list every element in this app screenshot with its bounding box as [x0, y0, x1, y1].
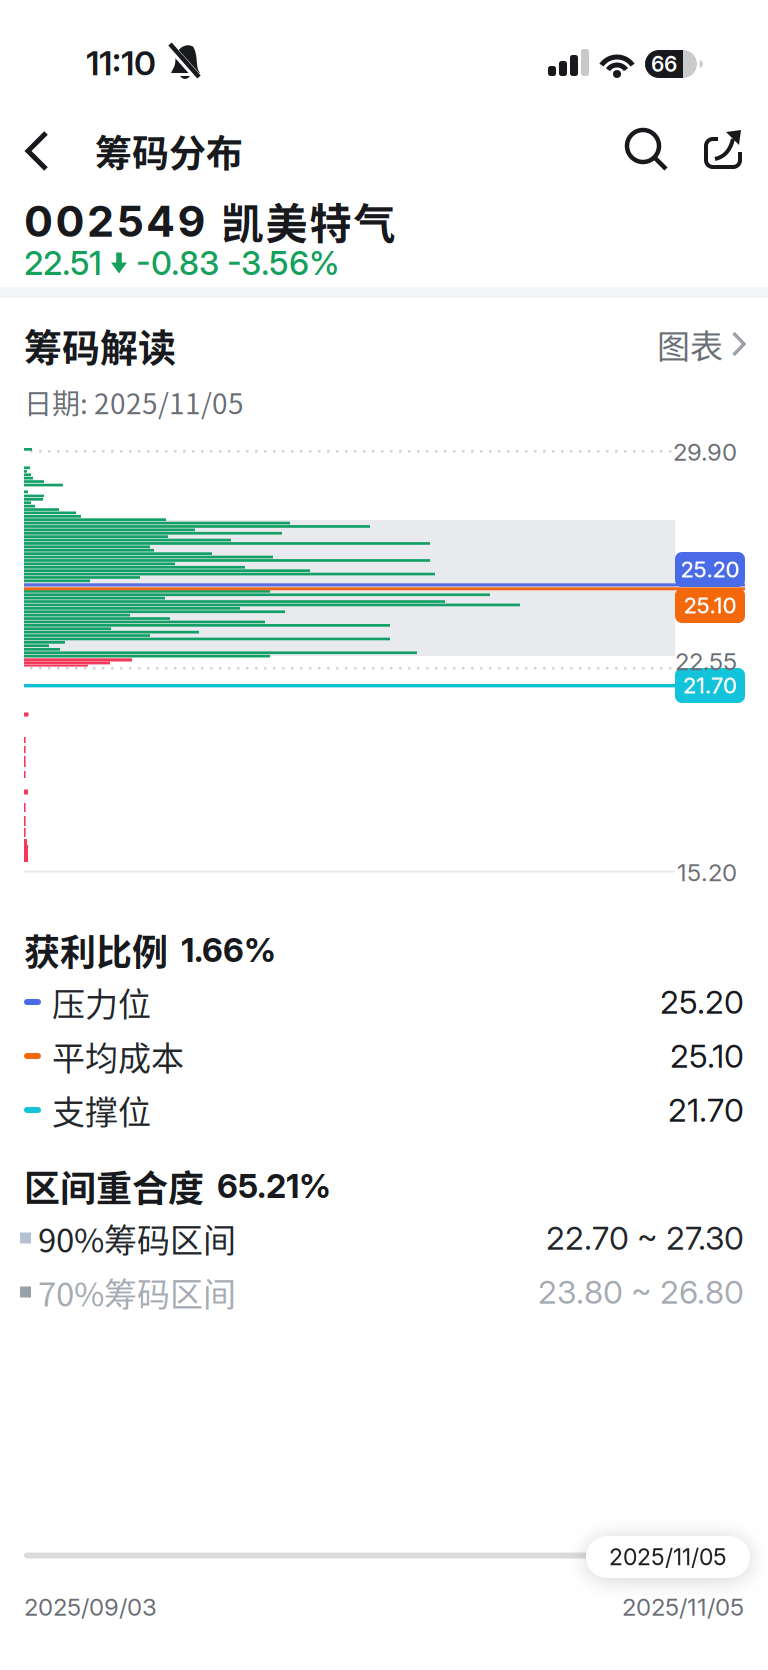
staticText: 压力位: [52, 978, 151, 1026]
staticText: 区间重合度: [24, 1160, 204, 1212]
staticText: 2025/11/05: [622, 1592, 744, 1621]
button[interactable]: Share: [0, 0, 768, 190]
staticText: 25.20: [680, 556, 739, 583]
staticText: 1.66%: [181, 930, 276, 970]
button[interactable]: 图表: [0, 0, 746, 72]
staticText: 2025/09/03: [24, 1592, 157, 1621]
staticText: 获利比例: [24, 924, 168, 976]
staticText: 65.21%: [217, 1166, 331, 1206]
staticText: 2025/11/05: [609, 1543, 727, 1571]
staticText: 平均成本: [52, 1032, 184, 1080]
staticText: -0.83 -3.56%: [136, 243, 339, 283]
staticText: 66: [651, 51, 677, 77]
staticText: 凯美特气: [221, 191, 395, 251]
staticText: 22.55: [675, 647, 737, 676]
staticText: 21.70: [668, 1091, 744, 1129]
staticText: 23.80 ~ 26.80: [538, 1273, 744, 1311]
staticText: 25.10: [670, 1037, 744, 1075]
staticText: 25.10: [683, 592, 736, 619]
staticText: 11:10: [86, 42, 156, 83]
staticText: 29.90: [673, 437, 737, 466]
staticText: 22.70 ~ 27.30: [546, 1219, 744, 1257]
staticText: 日期: 2025/11/05: [24, 382, 244, 422]
staticText: 70%筹码区间: [38, 1268, 236, 1316]
staticText: 22.51: [24, 243, 102, 283]
staticText: 25.20: [660, 983, 744, 1021]
staticText: 筹码解读: [24, 317, 176, 372]
staticText: 筹码分布: [95, 124, 243, 178]
staticText: 002549: [24, 195, 205, 247]
button[interactable]: Search: [0, 0, 768, 190]
staticText: 90%筹码区间: [38, 1214, 236, 1262]
staticText: 15.20: [677, 858, 737, 887]
button[interactable]: Date slider: [586, 1536, 750, 1578]
staticText: 图表: [657, 320, 723, 368]
staticText: 21.70: [683, 672, 737, 699]
staticText: 支撑位: [52, 1086, 151, 1134]
button[interactable]: Back: [0, 0, 70, 190]
